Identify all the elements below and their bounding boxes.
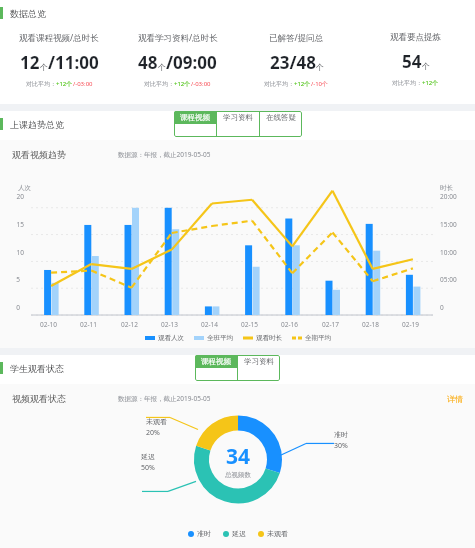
staticText: 个: [40, 62, 48, 72]
button[interactable]: 观看人次: [145, 334, 184, 342]
button[interactable]: 观看要点提炼: [356, 26, 475, 93]
staticText: 未观看: [146, 417, 167, 426]
staticText: 02-13: [161, 320, 178, 329]
staticText: 02-14: [201, 320, 218, 329]
staticText: 20%: [146, 428, 160, 438]
staticText: 50%: [141, 463, 155, 473]
staticText: 延迟: [232, 529, 246, 538]
staticText: 数据源：年报，截止2019-05-05: [118, 150, 211, 159]
button[interactable]: 观看时长: [243, 334, 282, 342]
staticText: 对比平均：: [264, 80, 294, 88]
staticText: 54: [402, 50, 422, 73]
staticText: 人次: [18, 184, 31, 192]
staticText: 15: [16, 220, 24, 229]
staticText: 未观看: [267, 529, 288, 538]
button[interactable]: 全班平均: [194, 334, 233, 342]
staticText: 已解答/提问总: [269, 32, 324, 44]
staticText: 对比平均：: [392, 79, 422, 87]
staticText: 个: [158, 62, 166, 72]
staticText: 全班平均: [207, 334, 233, 342]
staticText: 观看要点提炼: [390, 32, 441, 43]
staticText: 在线答疑: [266, 113, 296, 122]
button[interactable]: 详情: [443, 390, 467, 408]
staticText: +12个: [422, 79, 439, 87]
staticText: 5: [16, 275, 20, 284]
staticText: 48: [138, 51, 158, 74]
staticText: 02-19: [402, 320, 419, 329]
staticText: /09:00: [166, 51, 217, 74]
button[interactable]: 课程视频: [195, 355, 237, 368]
staticText: 课程视频: [201, 357, 231, 366]
button[interactable]: 观看学习资料/总时长: [118, 26, 237, 94]
staticText: 延迟: [141, 452, 155, 461]
staticText: 上课趋势总览: [10, 119, 64, 130]
button[interactable]: 课程视频: [174, 111, 216, 124]
staticText: 详情: [447, 394, 463, 404]
staticText: 02-10: [40, 320, 57, 329]
staticText: 全期平均: [305, 334, 331, 342]
staticText: 02-18: [362, 320, 379, 329]
staticText: 总视频数: [225, 471, 251, 479]
staticText: 学习资料: [244, 357, 274, 366]
button[interactable]: 学习资料: [238, 355, 280, 368]
staticText: 12: [20, 51, 40, 74]
staticText: 数据总览: [10, 8, 46, 19]
staticText: /-03:00: [191, 80, 211, 88]
staticText: +12个: [294, 80, 311, 88]
staticText: 20:00: [440, 192, 457, 201]
button[interactable]: 观看课程视频/总时长: [0, 26, 118, 94]
staticText: 观看学习资料/总时长: [138, 32, 218, 44]
button[interactable]: 全期平均: [292, 334, 331, 342]
button[interactable]: 学习资料: [217, 111, 259, 124]
staticText: 23/48: [270, 51, 316, 74]
staticText: 02-11: [80, 320, 97, 329]
staticText: 15:00: [440, 220, 457, 229]
staticText: 学生观看状态: [10, 363, 64, 374]
staticText: 20: [16, 192, 24, 201]
staticText: 02-15: [241, 320, 258, 329]
staticText: 视频观看状态: [12, 393, 66, 404]
staticText: 0: [440, 303, 444, 312]
staticText: 观看课程视频/总时长: [19, 32, 99, 44]
staticText: 02-17: [322, 320, 339, 329]
staticText: 02-12: [121, 320, 138, 329]
staticText: /11:00: [48, 51, 99, 74]
staticText: 个: [316, 62, 324, 72]
staticText: 05:00: [440, 275, 457, 284]
staticText: 个: [422, 61, 430, 71]
staticText: 34: [226, 442, 251, 471]
staticText: 学习资料: [223, 113, 253, 122]
staticText: 准时: [197, 529, 211, 538]
staticText: /-10个: [311, 80, 329, 88]
staticText: +12个: [174, 80, 191, 88]
staticText: 时长: [440, 184, 453, 192]
staticText: 数据源：年报，截止2019-05-05: [118, 394, 211, 403]
button[interactable]: 延迟: [223, 529, 246, 538]
staticText: 观看视频趋势: [12, 149, 66, 160]
staticText: 课程视频: [180, 113, 210, 122]
button[interactable]: 未观看: [258, 529, 288, 538]
staticText: /-03:00: [73, 80, 93, 88]
staticText: 10: [16, 248, 24, 257]
button[interactable]: 在线答疑: [260, 111, 302, 124]
staticText: 观看时长: [256, 334, 282, 342]
staticText: 对比平均：: [144, 80, 174, 88]
staticText: 10:00: [440, 248, 457, 257]
button[interactable]: 准时: [188, 529, 211, 538]
button[interactable]: 已解答/提问总: [237, 26, 356, 94]
staticText: 准时: [334, 430, 348, 439]
staticText: +12个: [56, 80, 73, 88]
staticText: 0: [16, 303, 20, 312]
staticText: 观看人次: [158, 334, 184, 342]
staticText: 30%: [334, 441, 348, 451]
staticText: 对比平均：: [26, 80, 56, 88]
staticText: 02-16: [281, 320, 298, 329]
